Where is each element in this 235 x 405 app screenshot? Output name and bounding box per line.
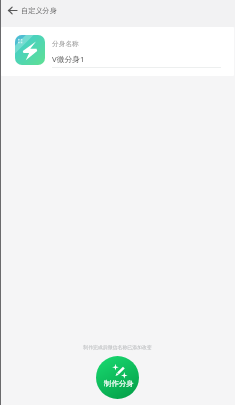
- staticText: V微分身1: [52, 54, 85, 65]
- button[interactable]: Back: [4, 2, 21, 19]
- staticText: 分身名称: [52, 40, 79, 48]
- staticText: 制作分身: [104, 379, 134, 388]
- button[interactable]: 制作分身: [96, 356, 139, 399]
- staticText: 制作完成后微信名称已添加改变: [0, 344, 235, 350]
- button[interactable]: 分身名称: [1, 27, 234, 76]
- staticText: 自定义分身: [21, 6, 57, 15]
